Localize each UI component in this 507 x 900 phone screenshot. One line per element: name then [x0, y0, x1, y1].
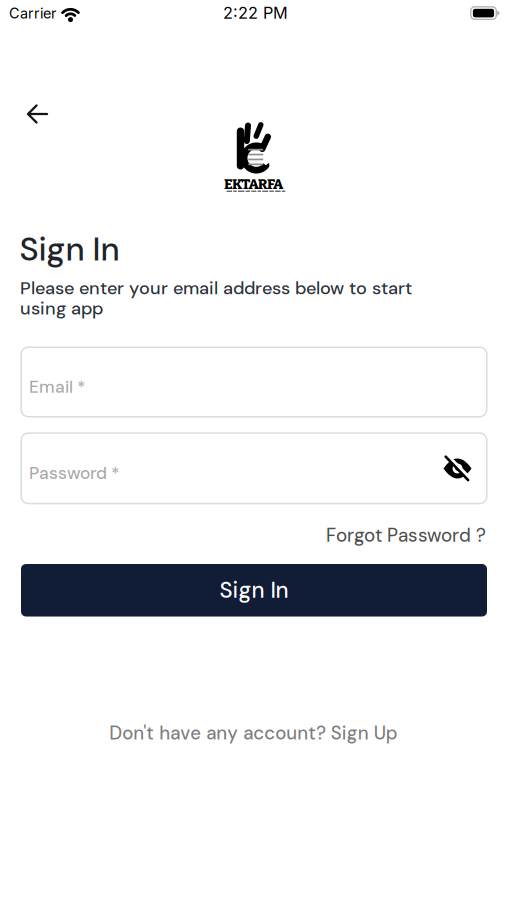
staticText: Sign In [219, 576, 288, 605]
button[interactable] [18, 92, 60, 136]
staticText: Email * [29, 375, 86, 398]
staticText: using app [20, 297, 103, 320]
staticText: Don't have any account? [109, 721, 326, 745]
staticText: Carrier [9, 4, 56, 22]
button[interactable]: Email * [20, 346, 487, 417]
staticText: Sign Up [331, 721, 398, 745]
staticText: Please enter your email address below to… [20, 276, 412, 300]
button[interactable]: Password * [20, 432, 487, 504]
staticText: Forgot Password ? [326, 523, 486, 547]
staticText: 2:22 PM [223, 3, 288, 23]
button[interactable]: Sign Up [331, 721, 398, 745]
staticText: Sign In [19, 228, 119, 271]
button[interactable]: Sign In [21, 564, 487, 616]
button[interactable] [435, 446, 479, 490]
staticText: Password * [29, 462, 120, 484]
staticText: EKTARFA [224, 176, 283, 193]
button[interactable]: Forgot Password ? [186, 523, 486, 547]
